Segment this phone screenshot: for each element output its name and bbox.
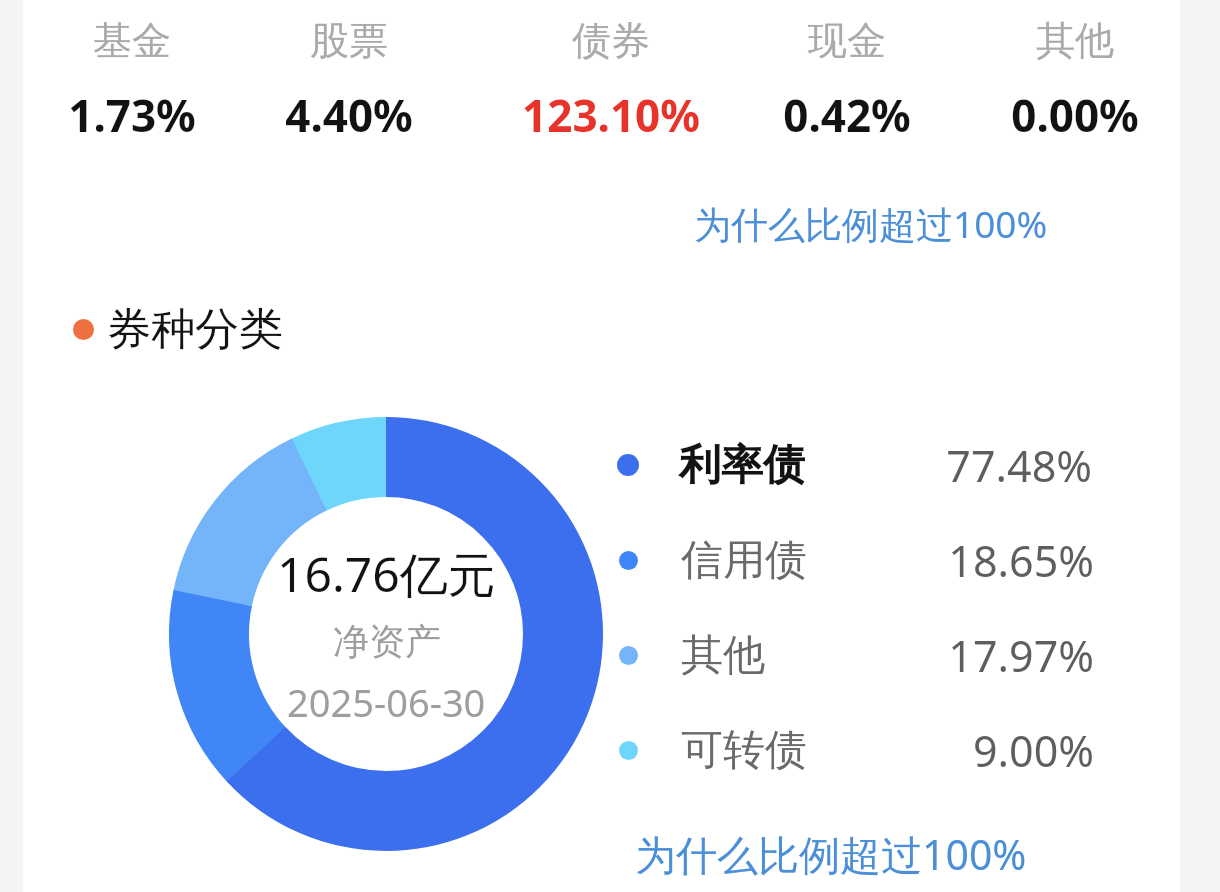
staticText: 股票 <box>310 16 388 65</box>
staticText: 1.73% <box>68 85 196 145</box>
staticText: 77.48% <box>946 436 1092 495</box>
staticText: 基金 <box>93 16 171 65</box>
button[interactable]: 股票 <box>229 16 469 145</box>
staticText: 现金 <box>808 16 886 65</box>
staticText: 16.76亿元 <box>277 541 496 607</box>
button[interactable]: 债券 <box>491 16 731 145</box>
button[interactable]: 其他 <box>619 617 1094 693</box>
staticText: 利率债 <box>679 439 805 492</box>
staticText: 净资产 <box>333 619 441 664</box>
staticText: 其他 <box>1036 16 1114 65</box>
staticText: 17.97% <box>948 626 1094 685</box>
staticText: 4.40% <box>285 85 413 145</box>
button[interactable]: 现金 <box>727 16 967 145</box>
button[interactable]: 基金 <box>12 16 252 145</box>
button[interactable]: 信用债 <box>619 522 1094 598</box>
staticText: 其他 <box>681 629 765 682</box>
staticText: 为什么比例超过100% <box>635 826 1027 882</box>
button[interactable]: 为什么比例超过100% <box>690 192 1052 255</box>
button[interactable]: 券种分类 <box>73 302 283 357</box>
staticText: 债券 <box>572 16 650 65</box>
button[interactable]: 可转债 <box>619 712 1094 788</box>
staticText: 18.65% <box>948 531 1094 590</box>
staticText: 为什么比例超过100% <box>694 198 1048 249</box>
staticText: 券种分类 <box>107 302 283 357</box>
staticText: 信用债 <box>681 534 807 587</box>
staticText: 9.00% <box>972 721 1094 780</box>
button[interactable]: 为什么比例超过100% <box>631 820 1031 888</box>
staticText: 0.42% <box>783 85 911 145</box>
button[interactable]: 利率债 <box>617 427 1092 503</box>
staticText: 0.00% <box>1011 85 1139 145</box>
staticText: 123.10% <box>522 85 700 145</box>
button[interactable]: 其他 <box>955 16 1195 145</box>
staticText: 2025-06-30 <box>287 676 486 728</box>
staticText: 可转债 <box>681 724 807 777</box>
